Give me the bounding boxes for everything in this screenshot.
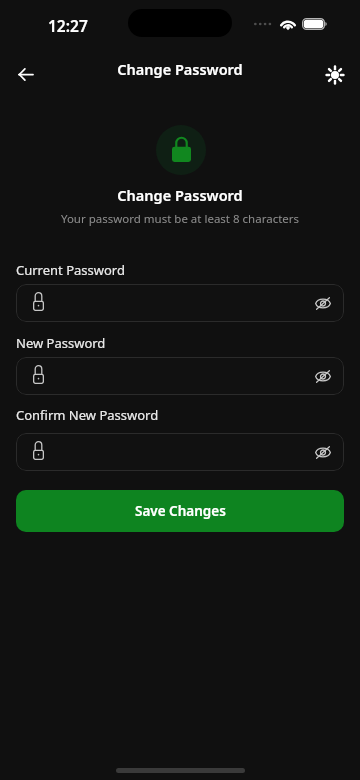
staticText: Change Password [0,185,360,205]
button[interactable]: Back [8,57,43,92]
staticText: 12:27 [48,15,88,36]
staticText: Your password must be at least 8 charact… [0,211,360,227]
button[interactable]: Show password [16,357,344,395]
staticText: Confirm New Password [16,406,159,424]
staticText: New Password [16,334,106,352]
button[interactable]: Show password [309,289,337,317]
staticText: Save Changes [135,502,226,520]
button[interactable]: Show password [309,362,337,390]
button[interactable]: Show password [16,433,344,471]
button[interactable]: Toggle theme [318,58,352,92]
staticText: Change Password [0,59,360,79]
button[interactable]: Show password [16,284,344,322]
button[interactable]: Show password [309,438,337,466]
button[interactable]: Save Changes [16,490,344,532]
staticText: Current Password [16,261,125,279]
